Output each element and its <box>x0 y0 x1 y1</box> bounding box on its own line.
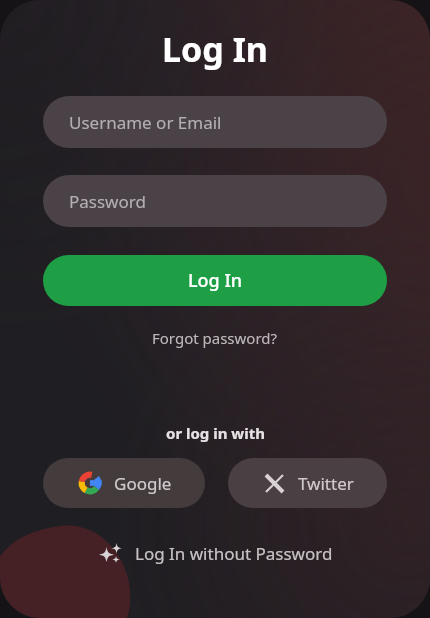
staticText: or log in with <box>166 423 265 443</box>
staticText: Username or Email <box>69 111 222 134</box>
button[interactable]: Username or Email <box>43 96 387 148</box>
staticText: Password <box>69 190 146 213</box>
staticText: Log In without Password <box>135 542 333 565</box>
staticText: Log In <box>162 26 268 72</box>
button[interactable]: Log In without Password <box>87 534 343 572</box>
staticText: Google <box>114 472 172 495</box>
button[interactable]: Password <box>43 175 387 227</box>
button[interactable]: Forgot password? <box>144 325 286 351</box>
button[interactable]: Log In <box>43 255 387 306</box>
staticText: Twitter <box>298 472 354 495</box>
button[interactable]: Google <box>43 458 205 508</box>
button[interactable]: Twitter <box>228 458 387 508</box>
staticText: Forgot password? <box>152 328 278 348</box>
staticText: Log In <box>188 268 243 293</box>
